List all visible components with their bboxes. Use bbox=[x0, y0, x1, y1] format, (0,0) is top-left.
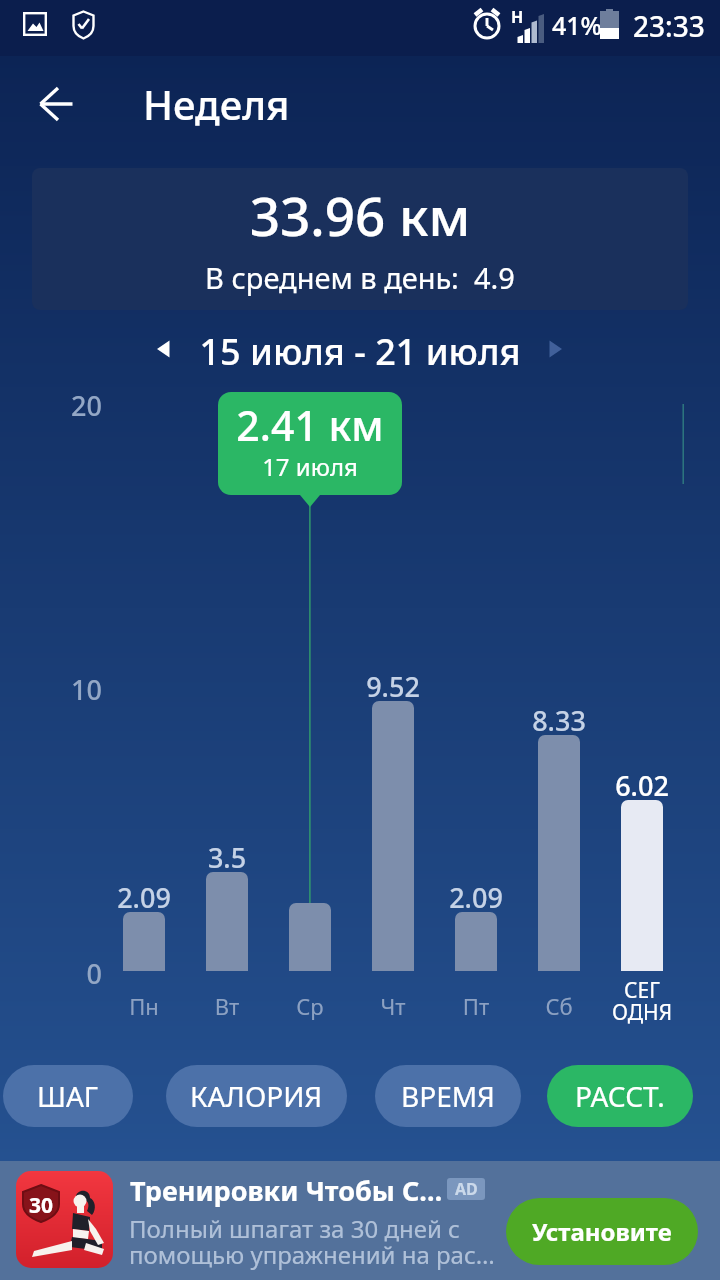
staticText: 20 bbox=[53, 387, 102, 424]
staticText: 2.09 bbox=[356, 879, 596, 916]
staticText: 41% bbox=[552, 8, 602, 42]
button[interactable]: 2.09 bbox=[455, 912, 497, 971]
button[interactable]: 8.33 bbox=[538, 735, 580, 971]
button[interactable]: 2.09 bbox=[123, 912, 165, 971]
staticText: 2.09 bbox=[24, 879, 264, 916]
staticText: Пн bbox=[24, 991, 264, 1021]
button[interactable]: 9.52 bbox=[372, 701, 414, 971]
staticText: 30 bbox=[26, 1191, 56, 1220]
staticText: ВРЕМЯ bbox=[401, 1077, 495, 1115]
staticText: помощью упражнений на рас… bbox=[129, 1238, 495, 1271]
staticText: 2.41 км bbox=[218, 397, 402, 453]
staticText: Пт bbox=[356, 991, 596, 1021]
button[interactable]: 15 июля - 21 июля bbox=[188, 325, 532, 383]
staticText: 23:33 bbox=[633, 7, 705, 45]
staticText: ШАГ bbox=[37, 1077, 99, 1115]
button[interactable]: Previous week bbox=[140, 330, 188, 378]
staticText: AD bbox=[455, 1178, 478, 1200]
staticText: 10 bbox=[53, 671, 102, 708]
staticText: 0 bbox=[53, 955, 102, 992]
staticText: 3.5 bbox=[107, 839, 347, 876]
staticText: Тренировки Чтобы С… bbox=[130, 1172, 443, 1209]
staticText: 15 июля - 21 июля bbox=[188, 327, 532, 376]
button[interactable]: 2.41 bbox=[289, 903, 331, 971]
button[interactable]: Установите bbox=[506, 1198, 698, 1265]
staticText: Ср bbox=[190, 991, 430, 1021]
staticText: СЕГ ОДНЯ bbox=[572, 976, 712, 1026]
staticText: 17 июля bbox=[218, 450, 402, 483]
staticText: 8.33 bbox=[439, 702, 679, 739]
staticText: Полный шпагат за 30 дней с bbox=[129, 1212, 460, 1245]
staticText: РАССТ. bbox=[575, 1077, 665, 1115]
button[interactable]: Back bbox=[28, 76, 84, 132]
staticText: Установите bbox=[532, 1215, 672, 1248]
button[interactable]: 33.96 км bbox=[32, 168, 688, 310]
staticText: КАЛОРИЯ bbox=[190, 1077, 323, 1115]
button[interactable]: ШАГ bbox=[3, 1065, 133, 1127]
button[interactable]: РАССТ. bbox=[547, 1065, 693, 1127]
staticText: 33.96 км bbox=[32, 179, 688, 251]
staticText: Вт bbox=[107, 991, 347, 1021]
staticText: 9.52 bbox=[273, 668, 513, 705]
staticText: Сб bbox=[439, 991, 679, 1021]
staticText: 6.02 bbox=[522, 767, 720, 804]
staticText: H bbox=[511, 6, 524, 28]
staticText: В среднем в день: 4.9 bbox=[32, 258, 688, 297]
staticText: Чт bbox=[273, 991, 513, 1021]
button[interactable]: 30 bbox=[0, 1161, 720, 1280]
button[interactable]: 3.5 bbox=[206, 872, 248, 971]
button[interactable]: Next week bbox=[532, 330, 580, 378]
button[interactable]: 6.02 bbox=[621, 800, 663, 971]
staticText: Неделя bbox=[143, 77, 290, 131]
button[interactable]: ВРЕМЯ bbox=[375, 1065, 521, 1127]
button[interactable]: КАЛОРИЯ bbox=[166, 1065, 347, 1127]
